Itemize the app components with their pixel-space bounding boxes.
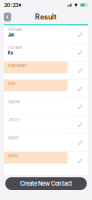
button[interactable]: JOB TITLE xyxy=(4,116,88,133)
staticText: LAST NAME xyxy=(8,46,22,50)
button[interactable]: Create New Contact xyxy=(5,177,87,190)
button[interactable]: FIRST NAME xyxy=(4,25,88,43)
button[interactable]: WEBSITE xyxy=(4,152,88,169)
staticText: Result xyxy=(35,13,57,21)
staticText: Create New Contact xyxy=(20,180,72,187)
button[interactable]: COMPANY xyxy=(4,98,88,115)
button[interactable]: Back xyxy=(4,13,11,21)
staticText: Jan xyxy=(8,32,15,37)
staticText: COMPANY xyxy=(8,100,20,104)
staticText: WEBSITE xyxy=(8,154,19,158)
staticText: PHONE NUMBER xyxy=(8,64,27,68)
button[interactable]: PHONE NUMBER xyxy=(4,62,88,79)
button[interactable]: ADDRESS xyxy=(4,134,88,151)
staticText: FIRST NAME xyxy=(8,28,23,32)
staticText: ADDRESS xyxy=(8,136,19,140)
staticText: JOB TITLE xyxy=(8,118,20,122)
staticText: 20:23 xyxy=(4,2,18,8)
button[interactable]: LAST NAME xyxy=(4,43,88,61)
staticText: EMAIL xyxy=(8,82,16,86)
staticText: Ko xyxy=(8,50,14,55)
button[interactable]: EMAIL xyxy=(4,80,88,97)
